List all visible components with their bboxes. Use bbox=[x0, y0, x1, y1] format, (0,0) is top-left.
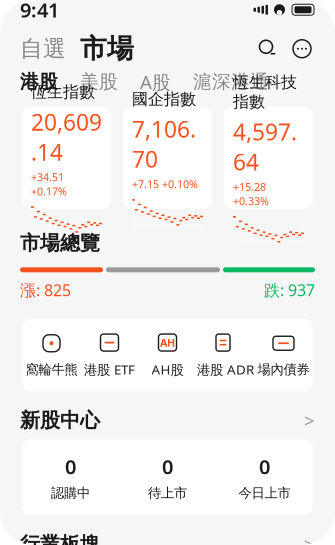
staticText: 7,106.70 bbox=[132, 114, 196, 174]
staticText: 漲: 825 bbox=[20, 279, 71, 300]
staticText: 20,609.14 bbox=[31, 107, 102, 167]
staticText: 自選 bbox=[20, 35, 66, 63]
button[interactable]: 搜尋 bbox=[255, 36, 281, 62]
button[interactable]: 國企指數 bbox=[123, 107, 212, 209]
staticText: 美股 bbox=[80, 70, 118, 93]
staticText: 認購中 bbox=[51, 485, 90, 501]
staticText: A股 bbox=[140, 69, 171, 94]
staticText: 場內債券 bbox=[257, 361, 309, 378]
staticText: > bbox=[304, 532, 315, 545]
button[interactable]: 美股 bbox=[80, 70, 118, 93]
button[interactable]: AH bbox=[138, 332, 196, 378]
button[interactable]: 0 bbox=[22, 439, 313, 515]
staticText: 0 bbox=[162, 453, 173, 480]
button[interactable]: 自選 bbox=[20, 35, 66, 63]
button[interactable]: 滬深港通 bbox=[193, 70, 269, 93]
staticText: 9:41 bbox=[20, 0, 59, 23]
staticText: 4,597.64 bbox=[233, 117, 297, 177]
staticText: > bbox=[304, 408, 315, 433]
staticText: 港股 bbox=[20, 70, 58, 93]
staticText: 恆生指數 bbox=[31, 82, 95, 102]
staticText: AH股 bbox=[151, 361, 183, 378]
staticText: 市場總覽 bbox=[20, 231, 100, 255]
staticText: 國企指數 bbox=[132, 89, 196, 109]
button[interactable]: 港股 bbox=[20, 70, 58, 93]
button[interactable]: 港股 ETF bbox=[80, 332, 138, 378]
staticText: +34.51 +0.17% bbox=[31, 170, 67, 198]
staticText: +7.15 +0.10% bbox=[132, 177, 198, 191]
staticText: 今日上市 bbox=[238, 485, 290, 501]
staticText: 港股 ADR bbox=[197, 361, 254, 378]
button[interactable]: 場內債券 bbox=[254, 332, 312, 378]
staticText: 0 bbox=[259, 453, 270, 480]
button[interactable]: 窩輪牛熊 bbox=[22, 332, 80, 378]
staticText: AH bbox=[160, 335, 175, 350]
button[interactable]: A股 bbox=[140, 69, 171, 94]
staticText: 窩輪牛熊 bbox=[25, 361, 77, 378]
staticText: 恆生科技指數 bbox=[233, 72, 297, 112]
staticText: 港股 ETF bbox=[84, 361, 135, 378]
button[interactable]: 市場 bbox=[66, 32, 134, 65]
staticText: 跌: 937 bbox=[264, 279, 315, 300]
button[interactable]: 行業板塊 bbox=[0, 531, 335, 545]
button[interactable]: 恆生指數 bbox=[22, 107, 111, 209]
button[interactable]: 恆生科技指數 bbox=[224, 107, 313, 209]
button[interactable]: 新股中心 bbox=[0, 407, 335, 433]
staticText: 新股中心 bbox=[20, 408, 100, 433]
staticText: 行業板塊 bbox=[20, 532, 100, 545]
button[interactable]: 港股 ADR bbox=[196, 332, 254, 378]
staticText: 市場 bbox=[80, 32, 134, 65]
staticText: 0 bbox=[65, 453, 76, 480]
staticText: 待上市 bbox=[148, 485, 187, 501]
staticText: 滬深港通 bbox=[193, 70, 269, 93]
button[interactable]: 訊息 bbox=[281, 36, 315, 62]
staticText: +15.28 +0.33% bbox=[233, 180, 269, 208]
